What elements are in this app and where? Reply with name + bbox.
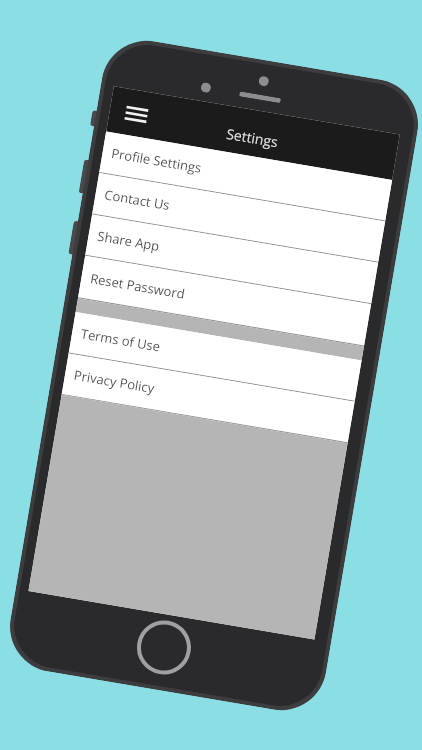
button[interactable]: Contact Us [92,173,385,263]
button[interactable]: Reset Password [78,256,371,347]
staticText: Contact Us [103,185,171,214]
button[interactable]: Profile Settings [99,132,392,221]
staticText: Share App [96,227,161,255]
staticText: Settings [225,124,279,151]
staticText: Terms of Use [80,324,162,355]
staticText: Privacy Policy [73,366,157,397]
button[interactable]: Share App [85,214,378,304]
button[interactable]: Home [133,616,195,678]
button[interactable]: Terms of Use [69,312,361,402]
staticText: Profile Settings [110,144,203,177]
button[interactable]: Open navigation menu [119,99,153,130]
button[interactable]: Privacy Policy [62,353,354,443]
staticText: Reset Password [89,269,187,303]
